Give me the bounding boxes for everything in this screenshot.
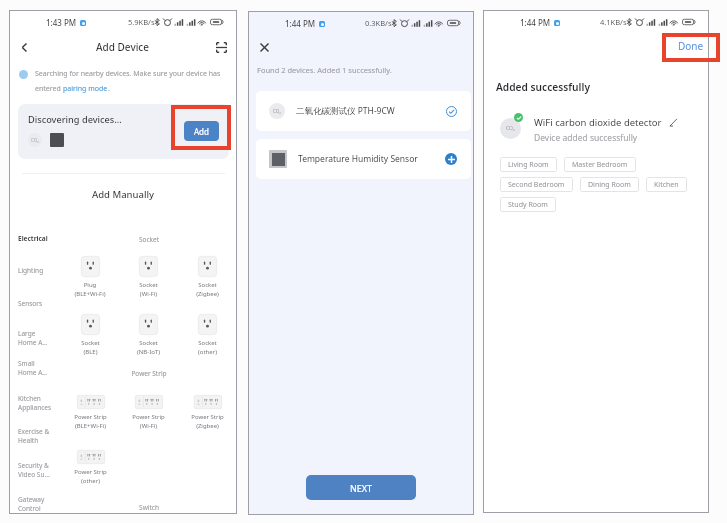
button[interactable]: Gateway Control <box>18 495 70 513</box>
staticText: Add <box>194 126 209 137</box>
staticText: Add Device <box>96 40 150 54</box>
button[interactable]: Master Bedroom <box>564 157 636 172</box>
staticText: Master Bedroom <box>572 160 628 170</box>
staticText: NEXT <box>350 482 373 494</box>
button[interactable]: Power Strip (Wi-Fi) <box>132 395 165 429</box>
staticText: Power Strip (BLE+Wi-Fi) <box>74 413 107 429</box>
staticText: Power Strip (Wi-Fi) <box>132 413 165 429</box>
staticText: 4.1KB/s <box>600 17 627 27</box>
staticText: Living Room <box>508 160 549 170</box>
button[interactable]: Second Bedroom <box>500 177 573 192</box>
staticText: Electrical <box>18 234 48 243</box>
staticText: 5.9KB/s <box>128 17 155 27</box>
button[interactable]: Socket (Zigbee) <box>196 256 219 297</box>
staticText: Socket (other) <box>198 339 217 355</box>
staticText: Temperature Humidity Sensor <box>298 153 418 165</box>
button[interactable]: Sensors <box>18 299 70 308</box>
button[interactable]: Kitchen Appliances <box>18 394 70 412</box>
staticText: Add Manually <box>9 188 237 201</box>
staticText: Second Bedroom <box>508 180 565 190</box>
staticText: Searching for nearby devices. Make sure … <box>35 69 221 79</box>
button[interactable]: Plug (BLE+Wi-Fi) <box>74 256 106 297</box>
staticText: CO₂ <box>273 108 281 114</box>
button[interactable]: Add <box>184 121 219 141</box>
staticText: Socket (NB-IoT) <box>137 339 160 355</box>
button[interactable]: Power Strip (other) <box>74 450 107 484</box>
button[interactable]: Socket (other) <box>198 314 217 355</box>
button[interactable]: Discovering devices... <box>18 104 229 159</box>
button[interactable]: Lighting <box>18 266 70 275</box>
button[interactable]: Add device <box>445 153 457 165</box>
button[interactable]: Power Strip (BLE+Wi-Fi) <box>74 395 107 429</box>
button[interactable]: NEXT <box>306 475 416 500</box>
staticText: Socket <box>61 235 237 244</box>
button[interactable]: Security & Video Su... <box>18 461 70 479</box>
staticText: pairing mode <box>63 84 108 94</box>
staticText: CO₂ <box>506 125 515 132</box>
staticText: WiFi carbon dioxide detector <box>534 116 662 129</box>
button[interactable]: Temperature Humidity Sensor <box>256 139 471 179</box>
button[interactable]: Exercise & Health <box>18 427 70 445</box>
button[interactable]: Living Room <box>500 157 557 172</box>
staticText: Added successfully <box>496 80 590 94</box>
button[interactable]: Rename device <box>669 118 678 127</box>
staticText: Study Room <box>508 200 548 210</box>
button[interactable]: Large Home A... <box>18 329 70 347</box>
button[interactable]: Socket (BLE) <box>81 314 100 355</box>
staticText: Power Strip (Zigbee) <box>191 413 224 429</box>
staticText: Socket (Zigbee) <box>196 281 219 297</box>
staticText: Power Strip (other) <box>74 468 107 484</box>
staticText: entered <box>35 84 63 94</box>
button[interactable]: Small Home A... <box>18 359 70 377</box>
staticText: Plug (BLE+Wi-Fi) <box>74 281 106 297</box>
staticText: Power Strip <box>61 369 237 378</box>
staticText: Dining Room <box>588 180 631 190</box>
staticText: . <box>108 84 110 94</box>
staticText: 1:43 PM <box>46 17 77 28</box>
staticText: Switch <box>61 503 237 512</box>
button[interactable]: Scan QR code <box>211 37 231 57</box>
staticText: Socket (BLE) <box>81 339 100 355</box>
staticText: Socket (Wi-Fi) <box>139 281 158 297</box>
staticText: 1:44 PM <box>285 18 316 29</box>
button[interactable]: Socket (NB-IoT) <box>137 314 160 355</box>
button[interactable]: Back <box>14 37 34 57</box>
button[interactable]: CO₂ <box>256 91 471 131</box>
staticText: 1:44 PM <box>520 17 551 28</box>
staticText: Found 2 devices. Added 1 successfully. <box>257 65 392 75</box>
button[interactable]: Socket (Wi-Fi) <box>139 256 158 297</box>
button[interactable]: Power Strip (Zigbee) <box>191 395 224 429</box>
button[interactable]: Study Room <box>500 197 556 212</box>
staticText: 0.3KB/s <box>365 18 392 28</box>
staticText: Kitchen <box>654 180 679 190</box>
button[interactable]: Dining Room <box>580 177 639 192</box>
button[interactable]: Kitchen <box>646 177 687 192</box>
staticText: CO₂ <box>31 137 39 143</box>
staticText: Done <box>678 39 704 53</box>
staticText: Device added successfully <box>534 132 638 144</box>
staticText: Discovering devices... <box>28 113 122 126</box>
button[interactable]: Close <box>254 37 274 57</box>
button[interactable]: Done <box>674 36 708 56</box>
staticText: 二氧化碳测试仪 PTH-9CW <box>296 105 395 117</box>
